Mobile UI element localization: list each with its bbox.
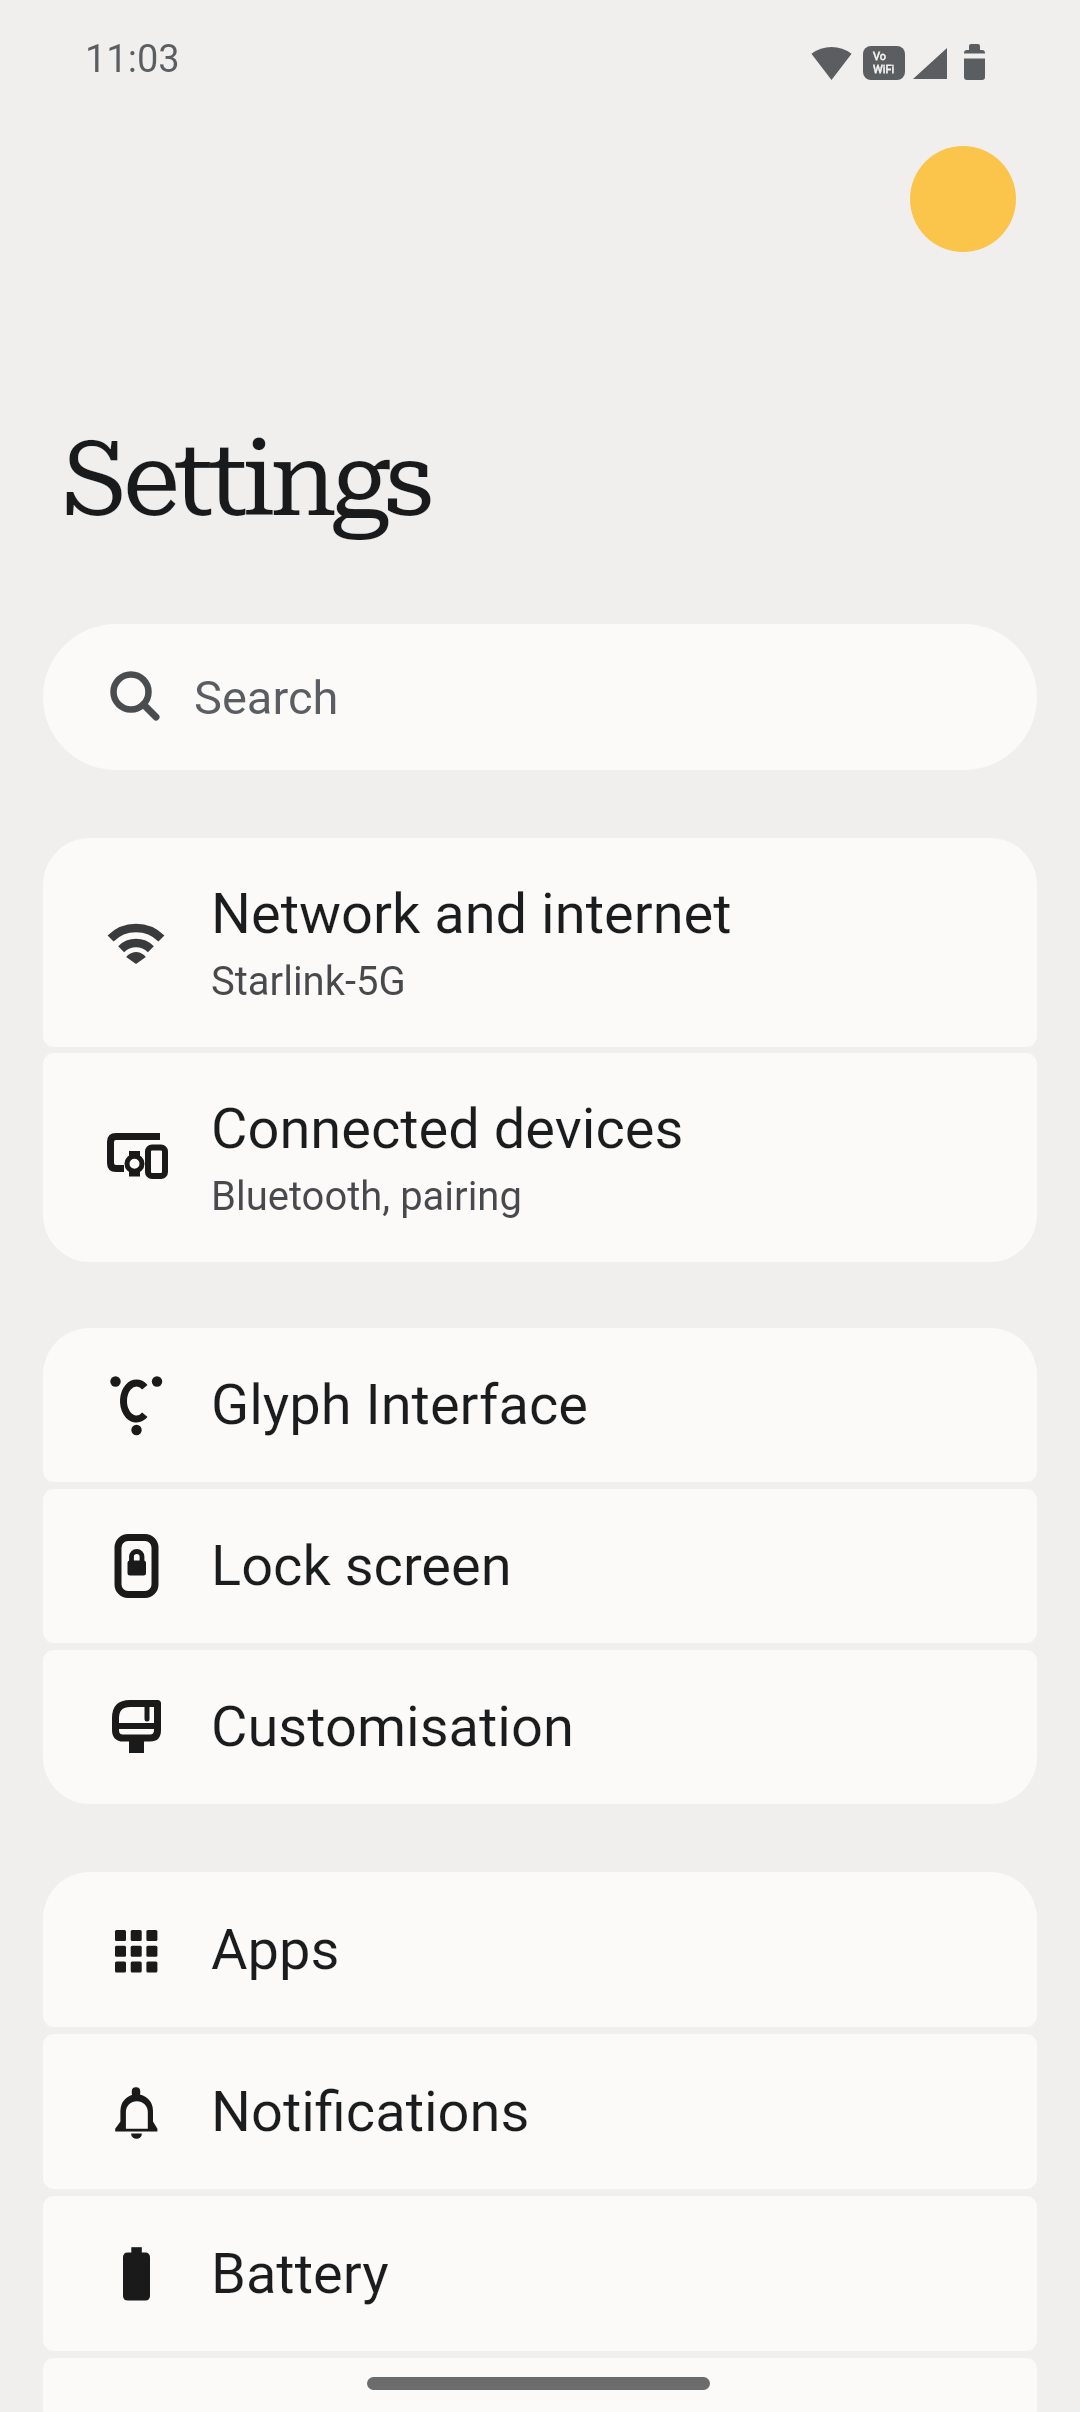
staticText: Settings: [62, 419, 429, 541]
button[interactable]: [43, 2358, 1037, 2412]
staticText: Customisation: [211, 1694, 574, 1760]
staticText: 11:03: [85, 37, 180, 82]
staticText: Lock screen: [211, 1533, 512, 1599]
staticText: Notifications: [211, 2079, 530, 2145]
button[interactable]: Connected devices: [43, 1053, 1037, 1262]
button[interactable]: Search: [43, 624, 1037, 770]
staticText: Bluetooth, pairing: [211, 1173, 522, 1220]
button[interactable]: Glyph Interface: [43, 1328, 1037, 1482]
button[interactable]: Customisation: [43, 1650, 1037, 1804]
staticText: Battery: [211, 2241, 389, 2307]
staticText: Connected devices: [211, 1096, 684, 1162]
button[interactable]: Notifications: [43, 2034, 1037, 2189]
button[interactable]: Network and internet: [43, 838, 1037, 1047]
staticText: Network and internet: [211, 881, 732, 947]
staticText: Starlink-5G: [211, 958, 406, 1005]
staticText: Vo WiFi: [873, 50, 895, 76]
staticText: Glyph Interface: [211, 1372, 588, 1438]
staticText: Search: [194, 670, 339, 725]
button[interactable]: [910, 146, 1016, 252]
button[interactable]: Battery: [43, 2196, 1037, 2351]
button[interactable]: Lock screen: [43, 1489, 1037, 1643]
staticText: Apps: [211, 1917, 340, 1983]
button[interactable]: Apps: [43, 1872, 1037, 2027]
